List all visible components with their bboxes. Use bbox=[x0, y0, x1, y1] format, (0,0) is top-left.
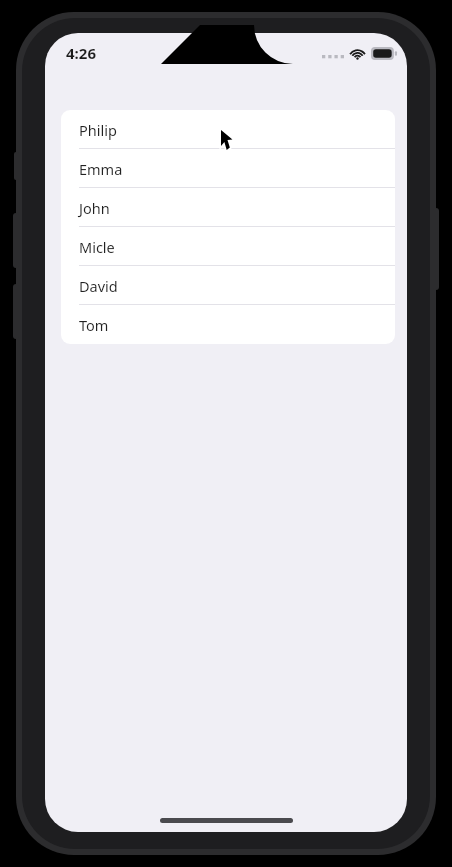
staticText: John bbox=[79, 198, 110, 218]
staticText: Micle bbox=[79, 237, 115, 257]
staticText: 4:26 bbox=[66, 43, 96, 63]
staticText: Emma bbox=[79, 159, 123, 179]
button[interactable]: Micle bbox=[61, 227, 395, 266]
button[interactable]: Philip bbox=[61, 110, 395, 149]
button[interactable]: John bbox=[61, 188, 395, 227]
button[interactable]: Emma bbox=[61, 149, 395, 188]
button[interactable]: Tom bbox=[61, 305, 395, 344]
button[interactable]: David bbox=[61, 266, 395, 305]
staticText: Philip bbox=[79, 120, 117, 140]
staticText: David bbox=[79, 276, 118, 296]
staticText: Tom bbox=[79, 315, 109, 335]
